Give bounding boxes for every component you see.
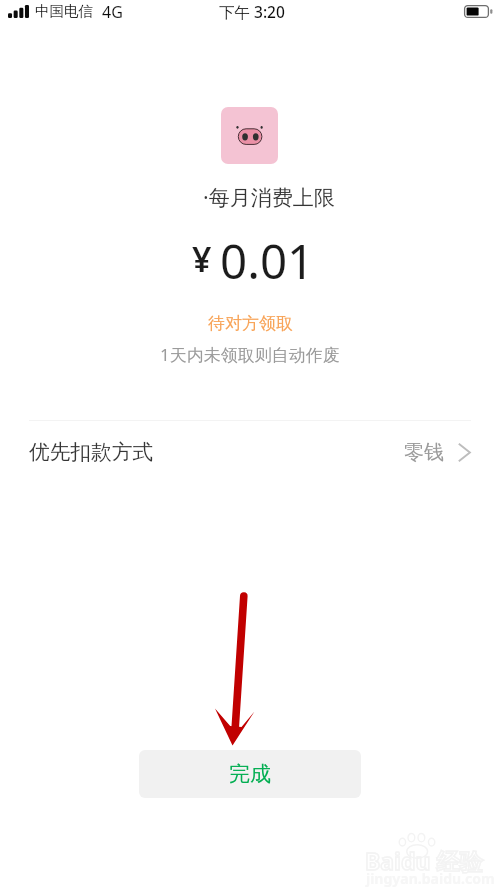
staticText: 4G: [102, 1, 123, 23]
staticText: 0.01: [220, 228, 315, 293]
button[interactable]: Sender avatar: [221, 107, 278, 164]
staticText: 待对方领取: [208, 313, 293, 334]
staticText: 零钱: [404, 440, 444, 465]
staticText: 完成: [229, 761, 271, 787]
staticText: jingyan.baidu.com: [366, 869, 495, 888]
staticText: 中国电信: [35, 2, 93, 20]
staticText: 下午 3:20: [219, 1, 285, 22]
staticText: ·每月消费上限: [203, 183, 335, 212]
other: Battery level: [464, 5, 493, 18]
other: Cellular signal strength: [8, 5, 29, 18]
button[interactable]: 完成: [139, 750, 361, 798]
staticText: ¥: [192, 236, 212, 282]
staticText: Baidu 经验: [365, 845, 483, 876]
button[interactable]: 优先扣款方式: [0, 421, 500, 483]
staticText: 优先扣款方式: [29, 439, 154, 465]
staticText: 1天内未领取则自动作废: [160, 343, 340, 366]
